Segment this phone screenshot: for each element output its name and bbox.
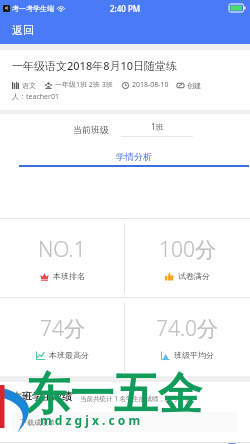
staticText: m d z g j x . c o m bbox=[40, 412, 141, 428]
staticText: 本班排名 bbox=[53, 271, 85, 281]
staticText: 当前共统计 1 名学生的成绩，缺考 3 人 bbox=[80, 394, 192, 403]
staticText: 74分 bbox=[40, 314, 85, 343]
button[interactable]: 1班 bbox=[121, 121, 193, 137]
staticText: 人：teacher01 bbox=[12, 92, 59, 102]
staticText: 一年级语文2018年8月10日随堂练 bbox=[12, 58, 178, 73]
button[interactable]: NO.1 bbox=[0, 219, 124, 297]
staticText: 学情分析 bbox=[116, 151, 152, 162]
button[interactable]: 100分 bbox=[125, 219, 250, 297]
button[interactable]: 下载成绩单 bbox=[12, 412, 238, 432]
staticText: 语文 bbox=[22, 81, 36, 90]
staticText: 1班 bbox=[151, 121, 164, 132]
staticText: 2018-08-10 bbox=[132, 80, 169, 90]
staticText: 100分 bbox=[159, 235, 216, 264]
staticText: 本班学生成绩 bbox=[12, 390, 72, 403]
staticText: 班级平均分 bbox=[174, 350, 214, 360]
staticText: < bbox=[5, 5, 8, 12]
staticText: 74.0分 bbox=[156, 314, 219, 343]
staticText: 试卷满分 bbox=[178, 271, 210, 281]
staticText: 当前班级 bbox=[73, 124, 109, 135]
button[interactable]: 学情分析 bbox=[18, 151, 250, 167]
staticText: 本班最高分 bbox=[49, 350, 89, 360]
staticText: 创建 bbox=[187, 81, 201, 90]
staticText: 考一考学生端 bbox=[12, 4, 54, 13]
button[interactable]: 返回 bbox=[10, 21, 36, 39]
staticText: 一年级1班 2班 3班 bbox=[55, 80, 113, 90]
staticText: 东一五金 bbox=[26, 367, 202, 422]
staticText: 下载成绩单 bbox=[20, 418, 55, 427]
button[interactable]: 74分 bbox=[0, 298, 124, 376]
button[interactable]: 74.0分 bbox=[125, 298, 250, 376]
staticText: NO.1 bbox=[38, 235, 86, 264]
staticText: 返回 bbox=[12, 23, 34, 37]
staticText: 2:40 PM bbox=[110, 3, 141, 14]
